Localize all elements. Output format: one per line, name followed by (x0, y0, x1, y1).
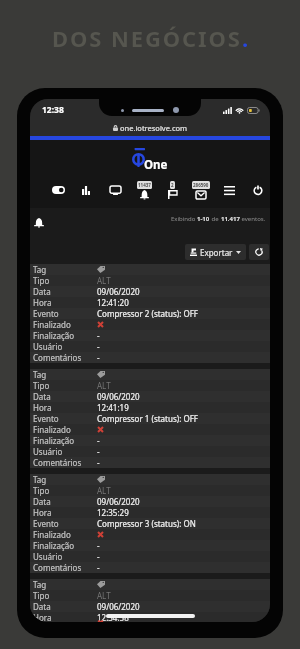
staticText: Finalização (33, 435, 75, 446)
staticText: - (97, 352, 100, 363)
staticText: 1-10 (197, 215, 210, 223)
staticText: one.iotresolve.com (120, 123, 188, 133)
staticText: ALT (97, 485, 111, 496)
staticText: 2 (171, 182, 174, 188)
staticText: Finalização (33, 540, 75, 551)
staticText: 09/06/2020 (97, 601, 140, 612)
staticText: Compressor 1 (status): OFF (97, 413, 198, 424)
button[interactable]: Tag (30, 579, 270, 622)
button[interactable]: Tag (30, 264, 270, 363)
staticText: 09/06/2020 (97, 496, 140, 507)
staticText: One (144, 157, 168, 173)
staticText: Finalizado (33, 319, 71, 330)
staticText: ALT (97, 590, 111, 601)
button[interactable]: Power off (247, 179, 269, 201)
staticText: - (97, 457, 100, 468)
staticText: - (97, 330, 100, 341)
staticText: 12:38 (42, 104, 64, 116)
staticText: Hora (33, 402, 52, 413)
staticText: Evento (33, 308, 59, 319)
staticText: 12:34:58 (97, 612, 129, 622)
staticText: ALT (97, 275, 111, 286)
button[interactable]: Notifications (31, 214, 47, 230)
staticText: . (242, 23, 249, 53)
staticText: - (97, 341, 100, 352)
staticText: - (97, 540, 100, 551)
staticText: Data (33, 601, 51, 612)
button[interactable]: Toggle dark mode (47, 179, 69, 201)
staticText: - (97, 435, 100, 446)
button[interactable]: Refresh (249, 244, 269, 260)
staticText: Finalizado (33, 529, 71, 540)
staticText: ALT (97, 380, 111, 391)
staticText: Comentários (33, 562, 82, 573)
staticText: Compressor 2 (status): OFF (97, 308, 198, 319)
staticText: - (97, 562, 100, 573)
staticText: 12:35:29 (97, 507, 129, 518)
staticText: Usuário (33, 551, 63, 562)
staticText: Evento (33, 413, 59, 424)
staticText: de (210, 215, 221, 223)
staticText: Data (33, 496, 51, 507)
button[interactable]: Alerts (133, 179, 155, 201)
staticText: - (97, 551, 100, 562)
staticText: 12:41:20 (97, 297, 129, 308)
staticText: Comentários (33, 352, 82, 363)
staticText: Usuário (33, 446, 63, 457)
staticText: Tag (33, 579, 47, 590)
staticText: Hora (33, 612, 52, 622)
staticText: Tipo (33, 485, 50, 496)
staticText: Tag (33, 264, 47, 275)
staticText: 09/06/2020 (97, 391, 140, 402)
button[interactable]: Tag (30, 474, 270, 573)
staticText: Comentários (33, 457, 82, 468)
staticText: Exibindo (171, 215, 197, 223)
button[interactable]: Monitor (104, 179, 126, 201)
staticText: Tag (33, 474, 47, 485)
staticText: eventos. (240, 215, 266, 223)
staticText: Data (33, 286, 51, 297)
staticText: - (97, 446, 100, 457)
staticText: Evento (33, 518, 59, 529)
staticText: 09/06/2020 (97, 286, 140, 297)
staticText: Tipo (33, 275, 50, 286)
staticText: Tipo (33, 380, 50, 391)
staticText: Compressor 3 (status): ON (97, 518, 196, 529)
staticText: Usuário (33, 341, 63, 352)
staticText: Exportar (200, 247, 233, 258)
staticText: 286590 (193, 182, 209, 188)
button[interactable]: Tag (30, 369, 270, 468)
staticText: Tipo (33, 590, 50, 601)
staticText: 12:41:19 (97, 402, 129, 413)
staticText: 11.417 (221, 215, 240, 223)
button[interactable]: Flags (161, 179, 183, 201)
staticText: Finalizado (33, 424, 71, 435)
staticText: Hora (33, 507, 52, 518)
button[interactable]: Exportar (185, 244, 246, 260)
button[interactable]: Menu (218, 179, 240, 201)
staticText: Hora (33, 297, 52, 308)
staticText: 11437 (138, 182, 151, 188)
staticText: Tag (33, 369, 47, 380)
staticText: Finalização (33, 330, 75, 341)
button[interactable]: Charts (75, 179, 97, 201)
staticText: Data (33, 391, 51, 402)
staticText: DOS NEGÓCIOS (52, 23, 242, 53)
button[interactable]: Messages (190, 179, 212, 201)
